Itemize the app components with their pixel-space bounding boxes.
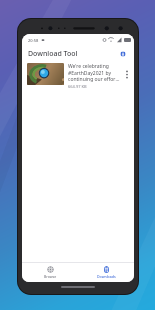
button[interactable]: We're celebrating #EarthDay2021 by conti… bbox=[22, 61, 134, 92]
button[interactable]: More options bbox=[122, 63, 131, 85]
button[interactable]: Downloads bbox=[78, 262, 134, 282]
staticText: We're celebrating #EarthDay2021 by conti… bbox=[68, 63, 121, 82]
staticText: Download Tool bbox=[28, 49, 78, 59]
staticText: Browse bbox=[44, 274, 57, 279]
staticText: Downloads bbox=[97, 274, 116, 279]
staticText: 20:58 bbox=[28, 38, 39, 43]
staticText: 664.97 KB bbox=[68, 84, 87, 89]
button[interactable]: Account bbox=[117, 48, 128, 59]
button[interactable]: Browse bbox=[22, 262, 78, 282]
